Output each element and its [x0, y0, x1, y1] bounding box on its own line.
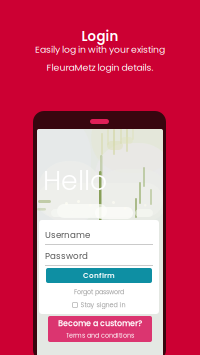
staticText: Hello [43, 162, 107, 199]
staticText: FleuraMetz login details. [46, 61, 153, 74]
button[interactable]: Become a customer? [48, 316, 152, 342]
staticText: Stay signed in [80, 300, 125, 309]
button[interactable]: Forgot password [39, 288, 159, 296]
staticText: Login [81, 27, 118, 46]
button[interactable]: Confirm [46, 268, 152, 283]
staticText: Username [45, 229, 90, 241]
button[interactable]: Stay signed in [39, 301, 159, 309]
staticText: Password [45, 250, 88, 262]
staticText: Confirm [83, 270, 115, 281]
staticText: Easily log in with your existing [35, 43, 165, 56]
staticText: Become a customer? [58, 318, 142, 329]
staticText: Forgot password [74, 287, 124, 296]
staticText: Terms and conditions [66, 331, 134, 340]
